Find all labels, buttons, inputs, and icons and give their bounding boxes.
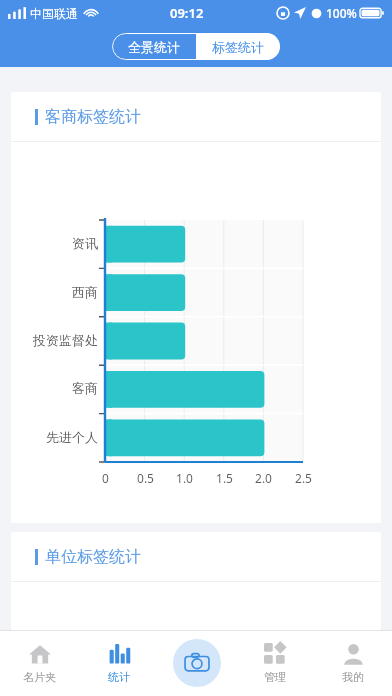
- staticText: 我的: [342, 670, 364, 684]
- staticText: 0.5: [137, 470, 154, 486]
- staticText: 中国联通: [30, 6, 78, 21]
- button[interactable]: 我的: [314, 630, 392, 696]
- staticText: 客商标签统计: [45, 107, 141, 127]
- button[interactable]: 标签统计: [196, 33, 280, 60]
- staticText: 1.0: [176, 470, 193, 486]
- staticText: 标签统计: [212, 39, 264, 55]
- staticText: 投资监督处: [33, 332, 98, 348]
- button[interactable]: 名片夹: [0, 630, 79, 696]
- staticText: 2.5: [295, 470, 312, 486]
- button[interactable]: 统计: [79, 630, 158, 696]
- staticText: 全景统计: [128, 39, 180, 55]
- staticText: 09:12: [170, 4, 204, 22]
- staticText: 先进个人: [46, 429, 98, 445]
- button[interactable]: 管理: [236, 630, 314, 696]
- staticText: 0: [102, 470, 109, 486]
- staticText: 统计: [108, 670, 130, 684]
- staticText: 管理: [264, 670, 286, 684]
- button[interactable]: 全景统计: [112, 33, 196, 60]
- staticText: 客商: [72, 380, 98, 396]
- staticText: 1.5: [216, 470, 233, 486]
- staticText: 单位标签统计: [45, 547, 141, 567]
- staticText: 资讯: [72, 235, 98, 251]
- staticText: 西商: [72, 284, 98, 300]
- staticText: 100%: [326, 5, 357, 21]
- button[interactable]: Scan card: [158, 630, 236, 696]
- staticText: 2.0: [255, 470, 272, 486]
- staticText: 名片夹: [23, 670, 56, 684]
